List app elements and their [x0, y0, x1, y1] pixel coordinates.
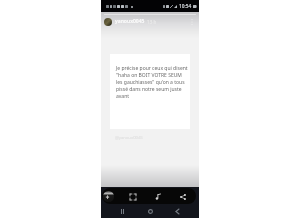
staticText: @yanoux0045 — [115, 135, 143, 141]
staticText: 10:54 — [179, 3, 192, 10]
button[interactable]: Share — [177, 191, 188, 202]
button[interactable]: Home — [144, 205, 157, 218]
button[interactable]: Music — [152, 191, 163, 202]
button[interactable]: Recent apps — [116, 205, 129, 218]
button[interactable]: Profile picture — [104, 18, 112, 26]
button[interactable]: yanoux0045 — [115, 18, 145, 25]
staticText: 13 h — [147, 19, 157, 25]
button[interactable]: Back — [171, 205, 184, 218]
button[interactable]: Now playing — [103, 191, 114, 202]
staticText: Je précise pour ceux qui disent "haha on… — [116, 65, 188, 100]
button[interactable]: More options — [187, 17, 197, 27]
button[interactable]: Expand — [127, 191, 138, 202]
